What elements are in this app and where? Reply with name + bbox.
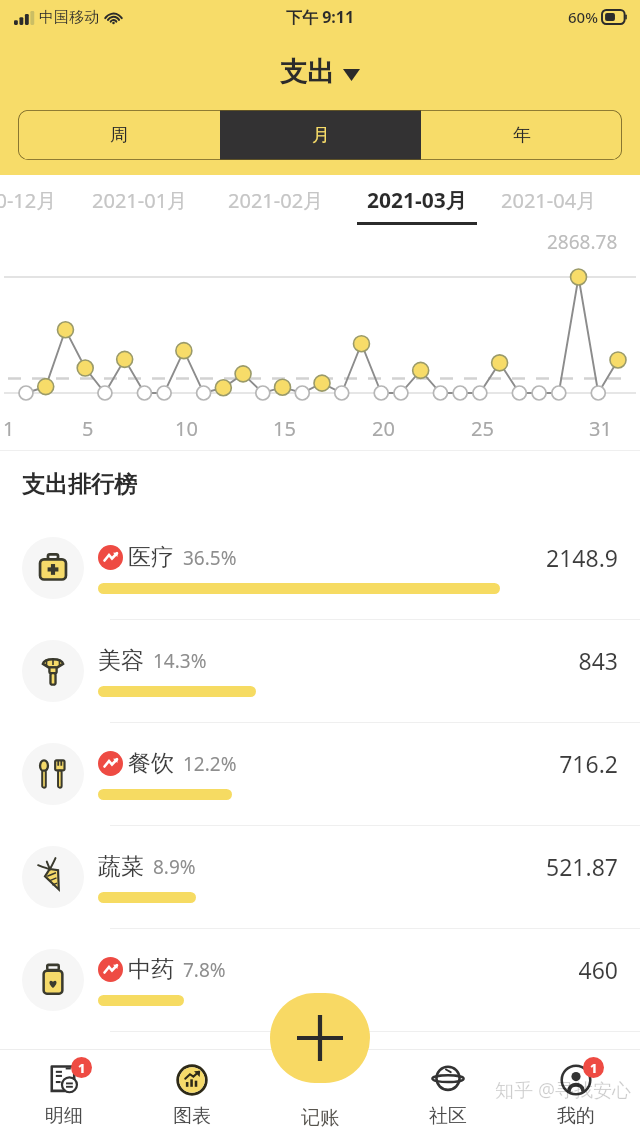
staticText: 蔬菜: [98, 852, 144, 881]
staticText: 7.8%: [183, 957, 226, 983]
staticText: 下午 9:11: [286, 6, 355, 28]
staticText: 1: [590, 1059, 598, 1077]
staticText: 2021-02月: [228, 187, 324, 214]
button[interactable]: 记账 Add record: [270, 993, 370, 1083]
button[interactable]: 医疗: [0, 517, 640, 620]
staticText: 716.2: [559, 748, 618, 779]
button[interactable]: 2021-03月: [344, 175, 490, 235]
staticText: 支出排行榜: [22, 470, 137, 499]
button[interactable]: 蔬菜: [0, 826, 640, 929]
staticText: 60%: [568, 7, 598, 27]
staticText: 20-12月: [0, 187, 57, 214]
staticText: 12.2%: [183, 751, 237, 777]
staticText: 社区: [429, 1104, 467, 1128]
staticText: 521.87: [546, 851, 618, 882]
button[interactable]: 20-12月: [0, 175, 72, 235]
staticText: 知乎 @寻找安心: [495, 1077, 632, 1103]
staticText: 我的: [557, 1104, 595, 1128]
staticText: 5: [82, 415, 94, 442]
button[interactable]: 周: [18, 110, 220, 160]
staticText: 支出: [280, 55, 334, 89]
staticText: 14.3%: [153, 648, 207, 674]
staticText: 15: [273, 415, 296, 442]
button[interactable]: 支出: [280, 55, 360, 89]
staticText: 843: [578, 645, 618, 676]
staticText: 2021-03月: [367, 186, 467, 215]
button[interactable]: 社区: [384, 1049, 512, 1139]
staticText: 中药: [128, 955, 174, 984]
button[interactable]: 年: [421, 110, 622, 160]
staticText: 2021-01月: [92, 187, 188, 214]
staticText: 20: [372, 415, 395, 442]
staticText: 2021-04月: [501, 187, 597, 214]
staticText: 明细: [45, 1104, 83, 1128]
button[interactable]: 餐饮: [0, 723, 640, 826]
staticText: 中国移动: [39, 8, 99, 27]
button[interactable]: 1: [512, 1049, 640, 1139]
button[interactable]: 2021-01月: [72, 175, 208, 235]
button[interactable]: 图表: [128, 1049, 256, 1139]
staticText: 月: [312, 124, 330, 147]
button[interactable]: 2021-04月: [490, 175, 608, 235]
staticText: 10: [175, 415, 198, 442]
staticText: 31: [589, 415, 612, 442]
staticText: 1: [3, 415, 15, 442]
button[interactable]: 1: [0, 1049, 128, 1139]
staticText: 图表: [173, 1104, 211, 1128]
staticText: 美容: [98, 646, 144, 675]
staticText: 1: [78, 1059, 86, 1077]
staticText: 2148.9: [546, 542, 618, 573]
button[interactable]: 月: [220, 110, 421, 160]
staticText: 周: [110, 124, 128, 147]
staticText: 年: [513, 124, 531, 147]
staticText: 8.9%: [153, 854, 196, 880]
staticText: 医疗: [128, 543, 174, 572]
button[interactable]: 美容: [0, 620, 640, 723]
staticText: 36.5%: [183, 545, 237, 571]
staticText: 记账: [301, 1106, 339, 1130]
button[interactable]: 中药: [0, 929, 640, 1032]
button[interactable]: 2021-02月: [208, 175, 344, 235]
staticText: 25: [471, 415, 494, 442]
staticText: 460: [578, 954, 618, 985]
staticText: 2868.78: [547, 229, 618, 255]
staticText: 餐饮: [128, 749, 174, 778]
